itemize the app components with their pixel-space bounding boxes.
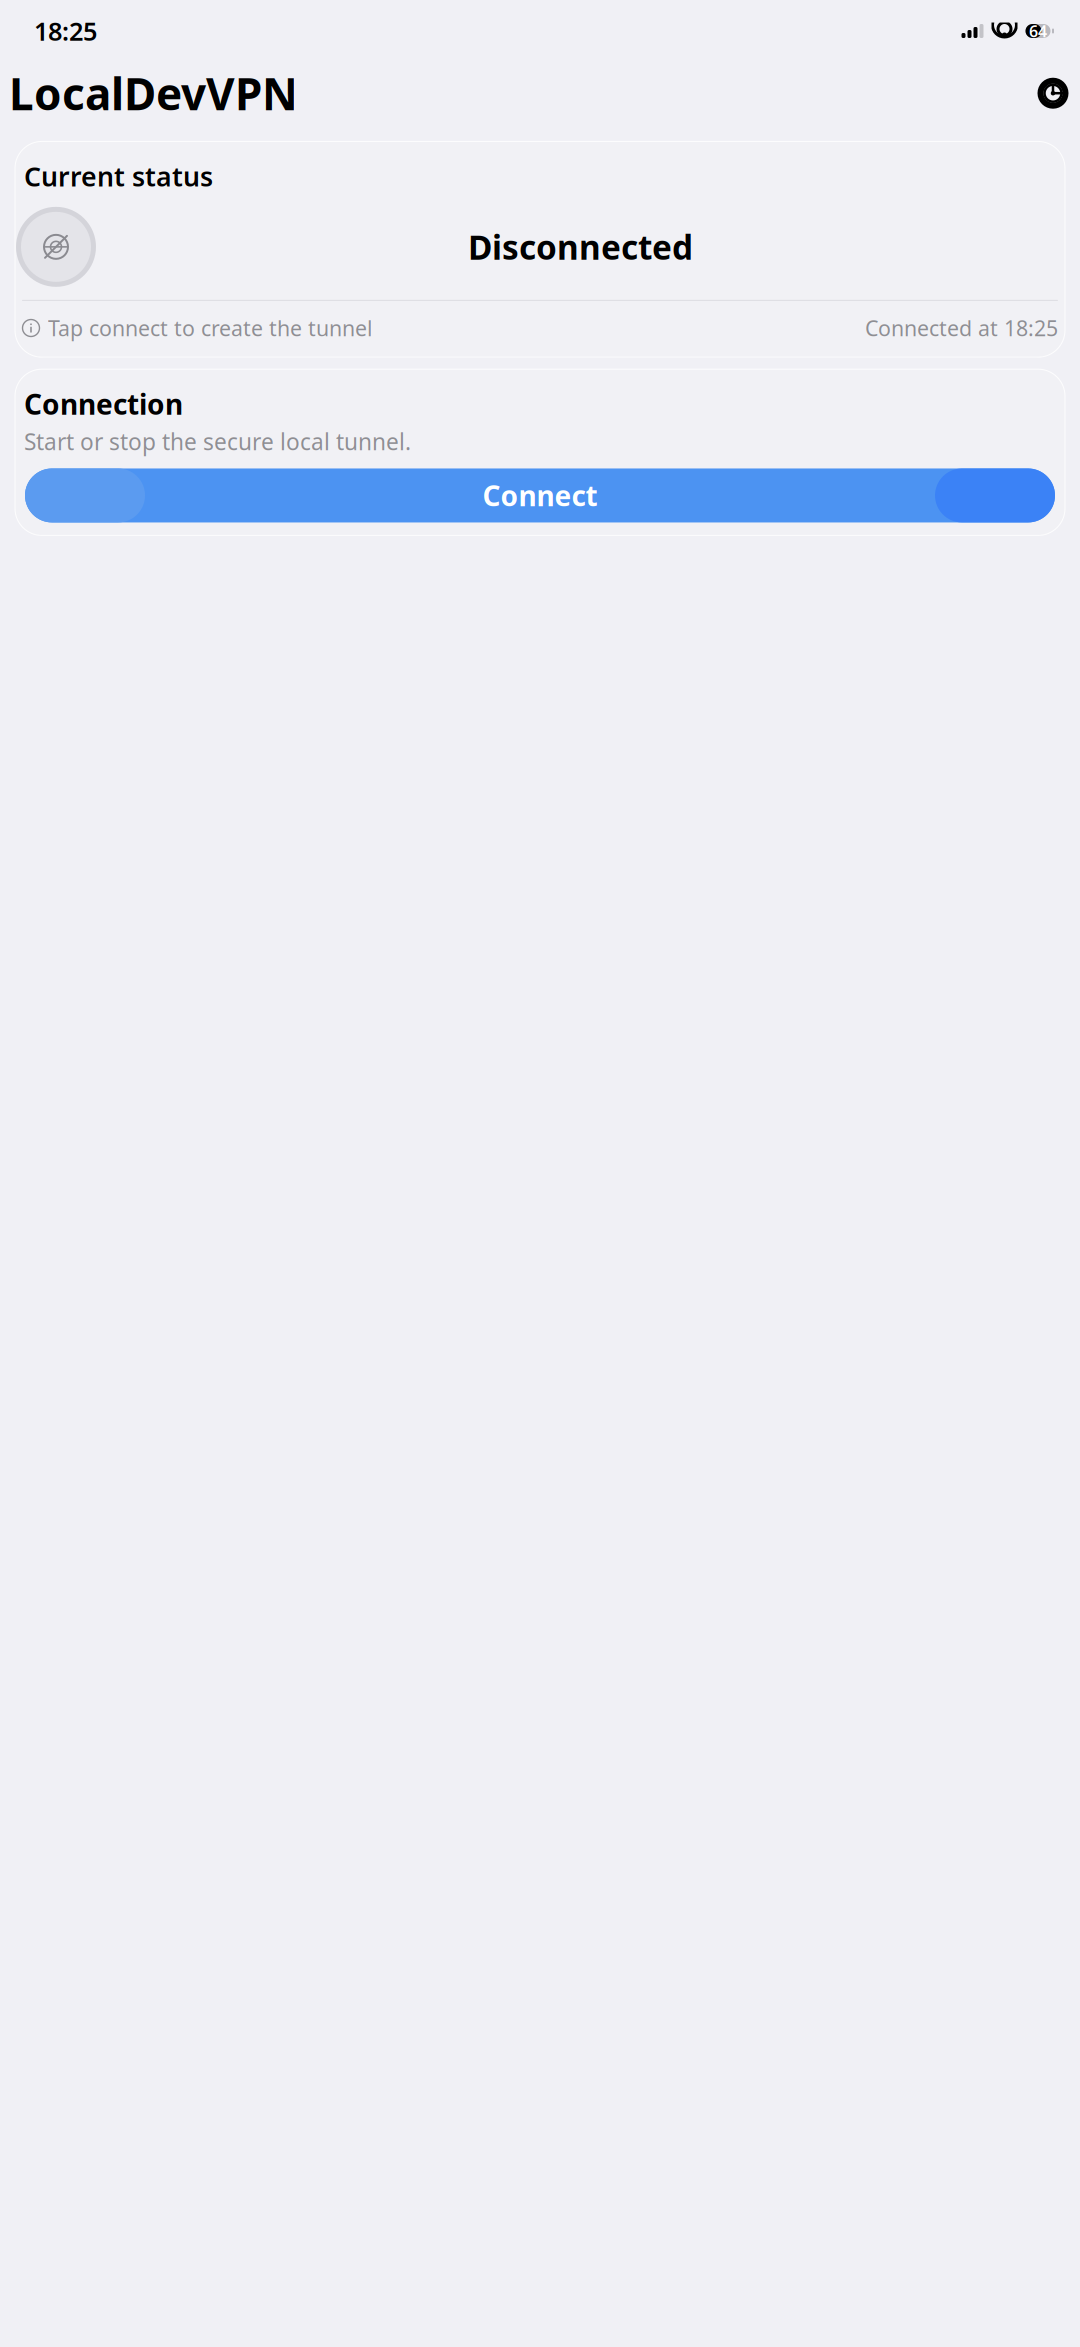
staticText: Connected at 18:25 bbox=[865, 314, 1058, 342]
staticText: 18:25 bbox=[34, 14, 97, 48]
staticText: Current status bbox=[24, 158, 213, 194]
staticText: 64 bbox=[1029, 20, 1047, 42]
staticText: Connection bbox=[24, 385, 183, 422]
staticText: Disconnected bbox=[468, 225, 693, 269]
button[interactable]: Settings bbox=[1031, 71, 1075, 115]
button[interactable]: Connect bbox=[25, 468, 1055, 522]
staticText: Start or stop the secure local tunnel. bbox=[24, 426, 411, 456]
staticText: Tap connect to create the tunnel bbox=[48, 314, 373, 342]
staticText: LocalDevVPN bbox=[9, 64, 298, 122]
staticText: Connect bbox=[482, 477, 597, 514]
